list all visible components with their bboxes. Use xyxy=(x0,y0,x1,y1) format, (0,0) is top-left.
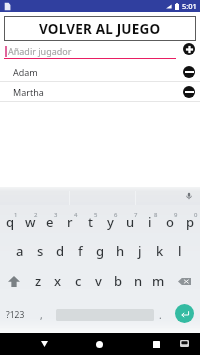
staticText: , xyxy=(40,308,43,322)
staticText: 0 xyxy=(194,211,198,219)
button[interactable]: j xyxy=(130,236,150,266)
staticText: p xyxy=(186,213,195,231)
staticText: b xyxy=(114,272,123,290)
button[interactable]: 2 xyxy=(20,205,40,236)
button[interactable]: Hide keyboard xyxy=(33,333,55,355)
staticText: q xyxy=(6,213,15,231)
staticText: 5 xyxy=(94,211,98,219)
staticText: f xyxy=(78,242,83,260)
staticText: t xyxy=(88,213,93,231)
button[interactable]: s xyxy=(30,236,50,266)
button[interactable]: , xyxy=(30,296,52,333)
staticText: Martha xyxy=(13,86,44,98)
button[interactable]: a xyxy=(10,236,30,266)
button[interactable]: Change keyboard xyxy=(180,340,189,347)
button[interactable]: Enter xyxy=(175,304,194,323)
button[interactable]: Recents xyxy=(145,333,167,355)
staticText: v xyxy=(95,272,102,290)
button[interactable]: 8 xyxy=(140,205,160,236)
button[interactable]: 6 xyxy=(100,205,120,236)
button[interactable]: v xyxy=(88,266,108,296)
staticText: x xyxy=(54,272,62,290)
button[interactable]: VOLVER AL JUEGO xyxy=(4,16,196,41)
staticText: w xyxy=(25,213,36,231)
staticText: c xyxy=(75,272,82,290)
staticText: 2 xyxy=(34,211,38,219)
button[interactable]: Shift xyxy=(0,266,28,296)
button[interactable]: b xyxy=(108,266,128,296)
button[interactable]: Añadir jugador xyxy=(183,43,195,55)
staticText: u xyxy=(126,213,135,231)
button[interactable]: 0 xyxy=(180,205,200,236)
button[interactable]: n xyxy=(128,266,148,296)
button[interactable]: 3 xyxy=(40,205,60,236)
button[interactable]: g xyxy=(90,236,110,266)
staticText: Adam xyxy=(13,66,38,78)
staticText: n xyxy=(134,272,143,290)
button[interactable]: m xyxy=(148,266,168,296)
button[interactable]: f xyxy=(70,236,90,266)
button[interactable]: ?123 xyxy=(0,296,30,333)
staticText: 6 xyxy=(114,211,118,219)
button[interactable]: h xyxy=(110,236,130,266)
staticText: 3 xyxy=(54,211,58,219)
button[interactable]: z xyxy=(28,266,48,296)
button[interactable]: 1 xyxy=(0,205,20,236)
staticText: 4 xyxy=(74,211,78,219)
staticText: 7 xyxy=(134,211,138,219)
staticText: y xyxy=(107,213,114,231)
staticText: ?123 xyxy=(6,309,25,321)
button[interactable]: Eliminar Adam xyxy=(183,66,195,78)
staticText: VOLVER AL JUEGO xyxy=(39,20,161,38)
button[interactable]: 7 xyxy=(120,205,140,236)
button[interactable]: . xyxy=(150,296,170,333)
staticText: j xyxy=(138,242,142,260)
button[interactable]: x xyxy=(48,266,68,296)
staticText: k xyxy=(156,242,164,260)
button[interactable]: Eliminar Martha xyxy=(183,86,195,98)
button[interactable]: 4 xyxy=(60,205,80,236)
button[interactable]: Voice input xyxy=(185,192,193,200)
staticText: z xyxy=(35,272,42,290)
staticText: o xyxy=(166,213,174,231)
staticText: 5:01 xyxy=(182,1,197,11)
staticText: i xyxy=(148,213,152,231)
staticText: Añadir jugador xyxy=(8,45,72,57)
button[interactable]: c xyxy=(68,266,88,296)
button[interactable]: 5 xyxy=(80,205,100,236)
staticText: . xyxy=(159,308,162,322)
button[interactable]: Backspace xyxy=(168,266,200,296)
staticText: 1 xyxy=(14,211,18,219)
staticText: m xyxy=(152,272,165,290)
staticText: h xyxy=(116,242,125,260)
staticText: e xyxy=(46,213,54,231)
button[interactable]: 9 xyxy=(160,205,180,236)
staticText: d xyxy=(56,242,65,260)
staticText: 8 xyxy=(154,211,158,219)
button[interactable]: d xyxy=(50,236,70,266)
button[interactable]: l xyxy=(170,236,190,266)
button[interactable]: Adam xyxy=(0,62,200,81)
staticText: 9 xyxy=(174,211,178,219)
staticText: s xyxy=(37,242,44,260)
staticText: r xyxy=(67,213,73,231)
staticText: g xyxy=(96,242,105,260)
button[interactable]: k xyxy=(150,236,170,266)
button[interactable]: Home xyxy=(88,333,110,355)
staticText: l xyxy=(178,242,182,260)
staticText: a xyxy=(16,242,24,260)
button[interactable]: Martha xyxy=(0,82,200,101)
